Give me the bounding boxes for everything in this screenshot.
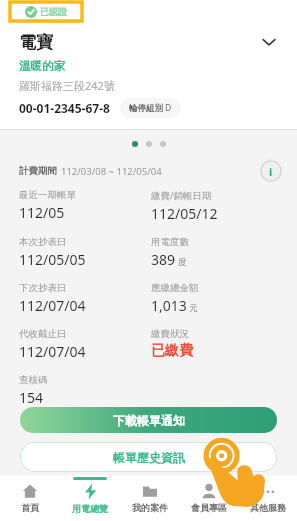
staticText: 00-01-2345-67-8 bbox=[19, 100, 110, 116]
button[interactable]: 會員專區 bbox=[179, 475, 238, 521]
staticText: 最近一期帳單 bbox=[19, 189, 76, 201]
staticText: 112/05 bbox=[19, 203, 65, 222]
staticText: 輪停組別 bbox=[129, 103, 163, 114]
staticText: 帳單歷史資訊 bbox=[113, 450, 185, 465]
staticText: 首頁 bbox=[21, 502, 39, 513]
button[interactable]: 展開帳號清單 bbox=[255, 28, 283, 56]
staticText: 已繳費 bbox=[151, 342, 193, 360]
staticText: D bbox=[165, 102, 172, 114]
button[interactable]: 下載帳單通知 bbox=[20, 407, 277, 433]
button[interactable]: 帳單歷史資訊 bbox=[20, 442, 277, 472]
staticText: 389 bbox=[151, 250, 176, 269]
button[interactable]: 說明 bbox=[259, 159, 283, 183]
staticText: 用電度數 bbox=[151, 236, 189, 248]
staticText: 電寶 bbox=[19, 32, 53, 53]
staticText: 1,013 bbox=[151, 296, 187, 315]
staticText: 羅斯福路三段242號 bbox=[19, 78, 115, 93]
staticText: 會員專區 bbox=[191, 502, 227, 513]
button[interactable]: 我的案件 bbox=[120, 475, 179, 521]
staticText: 代收截止日 bbox=[19, 328, 67, 340]
button[interactable]: 用電總覽 bbox=[60, 475, 120, 521]
staticText: 度 bbox=[178, 257, 187, 268]
staticText: 已認證 bbox=[40, 6, 67, 17]
staticText: 下載帳單通知 bbox=[113, 413, 185, 428]
staticText: 下次抄表日 bbox=[19, 282, 67, 294]
staticText: 繳費狀況 bbox=[151, 328, 189, 340]
staticText: 112/03/08 ~ 112/05/04 bbox=[61, 165, 162, 178]
staticText: 112/05/05 bbox=[19, 250, 86, 269]
button[interactable]: 首頁 bbox=[0, 475, 60, 521]
staticText: 其他服務 bbox=[250, 502, 286, 513]
staticText: i bbox=[269, 164, 273, 179]
staticText: 154 bbox=[19, 388, 44, 407]
staticText: 計費期間 bbox=[19, 165, 57, 177]
button[interactable]: 輪停組別 bbox=[120, 98, 181, 118]
staticText: 元 bbox=[189, 303, 198, 314]
staticText: 查核碼 bbox=[19, 374, 48, 386]
staticText: 我的案件 bbox=[132, 502, 168, 513]
staticText: 本次抄表日 bbox=[19, 236, 67, 248]
button[interactable]: 其他服務 bbox=[238, 475, 297, 521]
staticText: 112/05/12 bbox=[151, 204, 218, 223]
staticText: 112/07/04 bbox=[19, 342, 86, 361]
staticText: 112/07/04 bbox=[19, 296, 86, 315]
staticText: 用電總覽 bbox=[72, 503, 108, 514]
staticText: 繳費/銷帳日期 bbox=[151, 189, 212, 202]
staticText: 溫暖的家 bbox=[19, 59, 65, 73]
staticText: 應繳總金額 bbox=[151, 282, 199, 294]
